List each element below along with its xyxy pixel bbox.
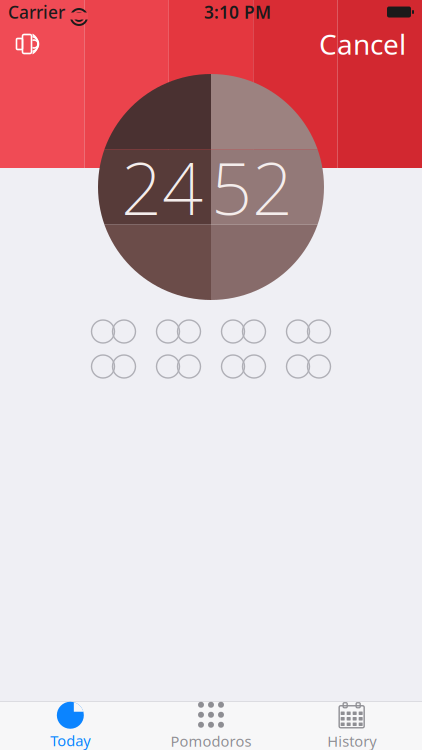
button[interactable]: Pomodoros	[141, 697, 281, 750]
staticText: 3:10 PM	[204, 0, 271, 23]
button[interactable]: Sound	[10, 26, 50, 62]
staticText: Carrier	[8, 0, 65, 23]
staticText: 52	[211, 139, 293, 235]
button[interactable]: History	[281, 697, 422, 750]
button[interactable]: Today	[0, 698, 141, 750]
staticText: Cancel	[319, 25, 406, 63]
button[interactable]: Cancel	[313, 21, 412, 67]
staticText: Today	[50, 731, 90, 750]
staticText: History	[327, 731, 376, 750]
staticText: Pomodoros	[170, 731, 251, 750]
staticText: 24	[121, 139, 203, 235]
